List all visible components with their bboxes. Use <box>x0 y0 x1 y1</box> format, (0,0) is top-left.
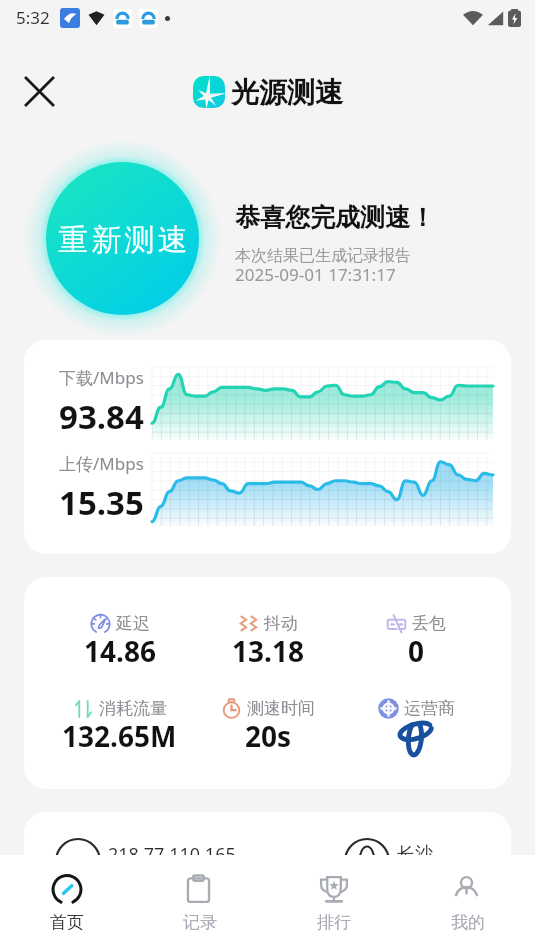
button[interactable]: 我的 <box>401 855 535 951</box>
staticText: 恭喜您完成测速！ <box>235 202 435 233</box>
staticText: 首页 <box>50 912 84 933</box>
staticText: 218.77.110.165 <box>108 842 236 867</box>
staticText: 15.35 <box>59 480 144 525</box>
button[interactable]: 长沙 <box>267 839 511 869</box>
staticText: 93.84 <box>59 394 144 439</box>
staticText: 13.18 <box>232 632 304 670</box>
staticText: 抖动 <box>264 613 298 634</box>
button[interactable]: 排行 <box>267 855 401 951</box>
staticText: 光源测速 <box>231 75 343 110</box>
staticText: 长沙 <box>397 843 433 866</box>
staticText: 我的 <box>451 912 485 933</box>
staticText: 重新测速 <box>58 221 191 259</box>
button[interactable]: 218.77.110.165 <box>24 839 267 869</box>
staticText: 延迟 <box>116 613 150 634</box>
staticText: 记录 <box>183 912 217 933</box>
button[interactable]: 首页 <box>0 855 133 951</box>
staticText: 14.86 <box>84 632 156 670</box>
button[interactable]: 记录 <box>133 855 267 951</box>
staticText: 丢包 <box>412 613 446 634</box>
staticText: 上传/Mbps <box>59 452 144 475</box>
staticText: 2025-09-01 17:31:17 <box>235 263 396 286</box>
staticText: 0 <box>408 632 425 670</box>
staticText: 本次结果已生成记录报告 <box>235 246 411 266</box>
staticText: 下载/Mbps <box>59 366 144 389</box>
staticText: 排行 <box>317 912 351 933</box>
staticText: 消耗流量 <box>99 698 167 719</box>
button[interactable]: Close <box>17 69 61 113</box>
staticText: 20s <box>245 717 292 755</box>
staticText: 测速时间 <box>247 698 315 719</box>
staticText: 132.65M <box>62 717 177 755</box>
button[interactable]: 重新测速 <box>24 140 221 337</box>
staticText: 5:32 <box>16 6 50 29</box>
staticText: 运营商 <box>404 698 455 719</box>
